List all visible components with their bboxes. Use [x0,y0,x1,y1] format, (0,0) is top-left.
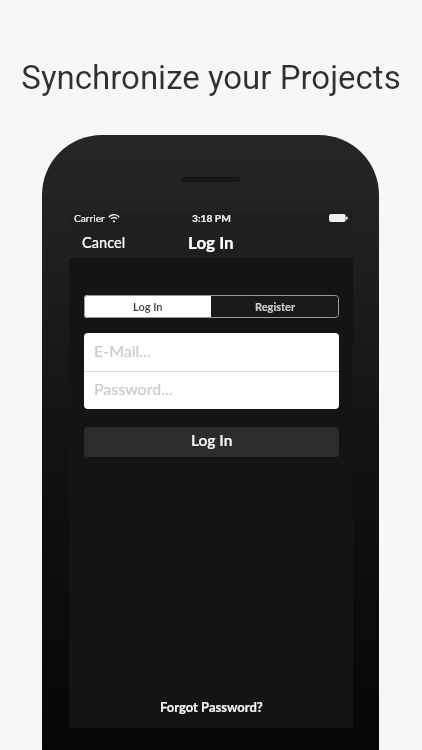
button[interactable]: E-Mail... [84,333,339,371]
button[interactable]: Register [211,295,339,318]
button[interactable]: Log In [84,427,339,457]
staticText: Carrier [74,212,105,224]
staticText: Log In [133,300,163,313]
button[interactable]: Log In [84,295,211,318]
staticText: Log In [188,232,234,252]
other: Wi-Fi signal [107,213,121,224]
staticText: E-Mail... [94,341,151,360]
staticText: Log In [191,431,233,450]
button[interactable]: Forgot Password? [154,696,269,718]
staticText: Synchronize your Projects [0,58,422,97]
staticText: 3:18 PM [192,212,231,224]
other: Battery full [329,214,348,222]
staticText: Forgot Password? [160,699,263,715]
button[interactable]: Password... [84,372,339,409]
button[interactable]: Cancel [78,231,130,255]
staticText: Password... [94,379,173,398]
staticText: Cancel [82,234,126,252]
staticText: Register [255,300,296,313]
